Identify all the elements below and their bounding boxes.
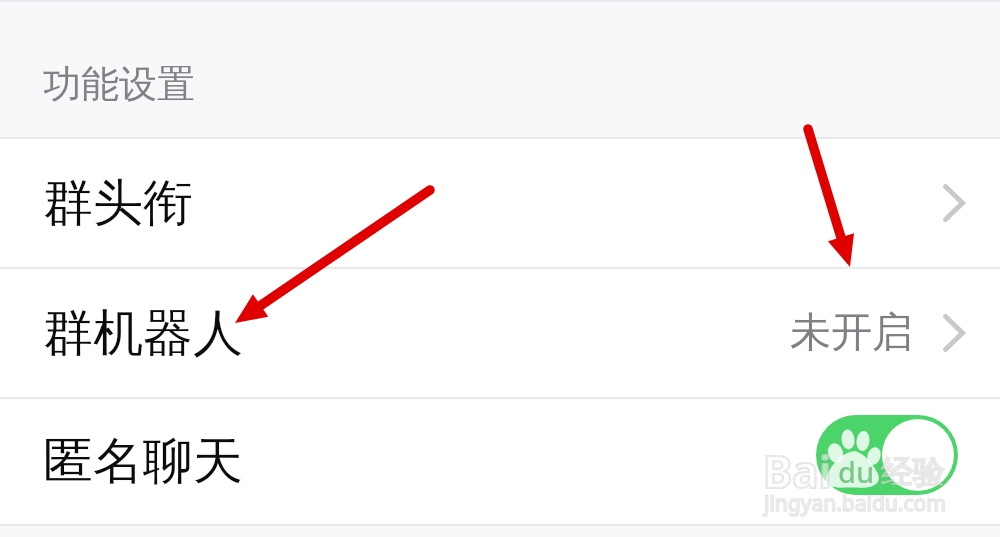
staticText: 未开启 [790,307,913,359]
staticText: 经验 [881,452,945,492]
staticText: 匿名聊天 [43,430,243,493]
staticText: 功能设置 [43,60,195,108]
staticText: Bai [763,441,832,501]
staticText: 群头衔 [43,172,193,235]
button[interactable]: 匿名聊天 [0,399,1000,524]
button[interactable]: Toggle anonymous chat [816,415,958,495]
other: Open 群机器人 [943,314,965,352]
staticText: 群机器人 [43,302,243,365]
staticText: 经验 [881,452,945,492]
staticText: jingyan.baidu.com [764,489,946,518]
staticText: Bai [763,441,832,501]
button[interactable]: 群头衔 [0,139,1000,267]
staticText: du [838,452,875,491]
button[interactable]: 群机器人 [0,269,1000,397]
other: Open 群头衔 [943,184,965,222]
staticText: jingyan.baidu.com [764,489,946,518]
